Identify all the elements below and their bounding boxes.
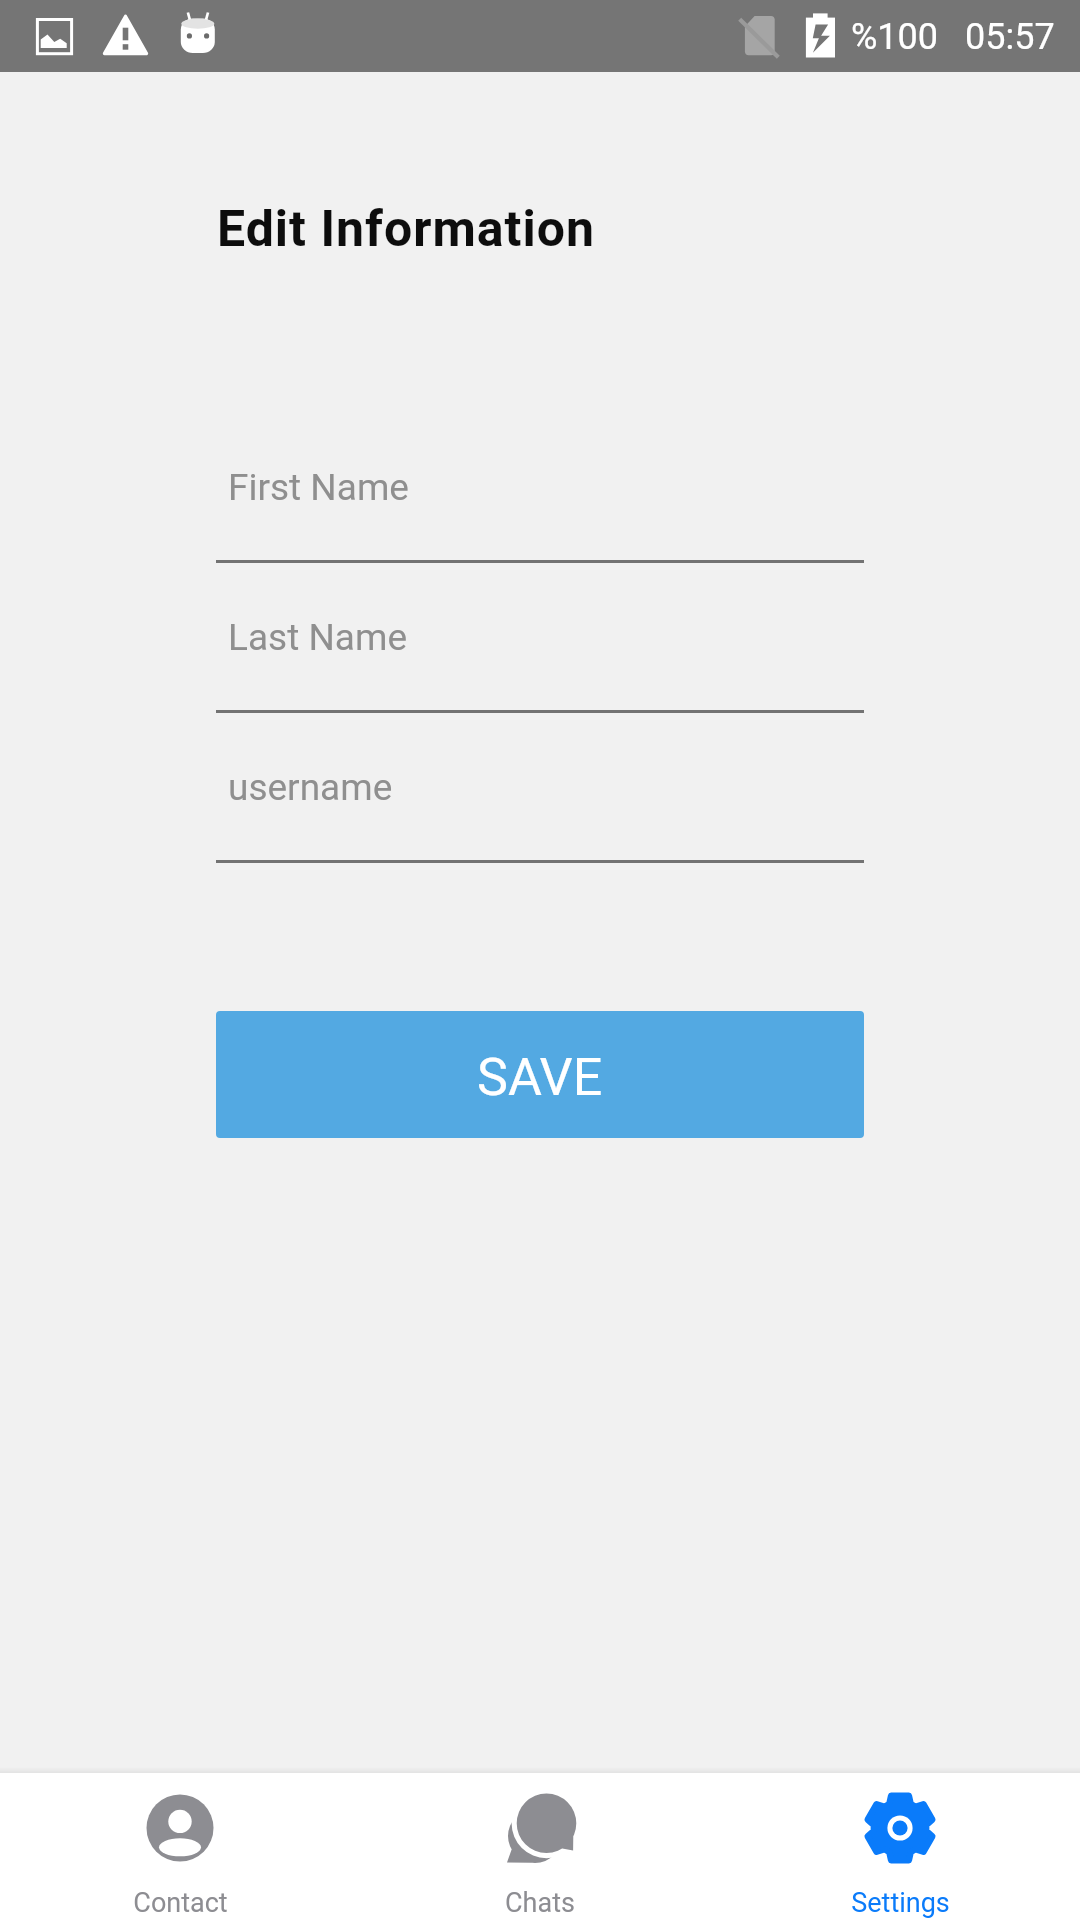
staticText: Settings [851, 1887, 950, 1919]
staticText: SAVE [477, 1047, 603, 1108]
button[interactable]: username [216, 713, 864, 863]
staticText: username [228, 766, 393, 809]
button[interactable]: Settings [720, 1773, 1080, 1920]
staticText: %100 [851, 16, 939, 58]
button[interactable]: Contact [0, 1773, 360, 1920]
button[interactable]: First Name [216, 413, 864, 563]
button[interactable]: Last Name [216, 563, 864, 713]
staticText: Edit Information [217, 200, 596, 259]
staticText: Last Name [228, 616, 408, 659]
button[interactable]: SAVE [216, 1011, 864, 1138]
staticText: Chats [505, 1887, 575, 1919]
staticText: First Name [228, 466, 409, 509]
staticText: 05:57 [965, 16, 1055, 58]
button[interactable]: Chats [360, 1773, 720, 1920]
staticText: Contact [133, 1887, 228, 1919]
